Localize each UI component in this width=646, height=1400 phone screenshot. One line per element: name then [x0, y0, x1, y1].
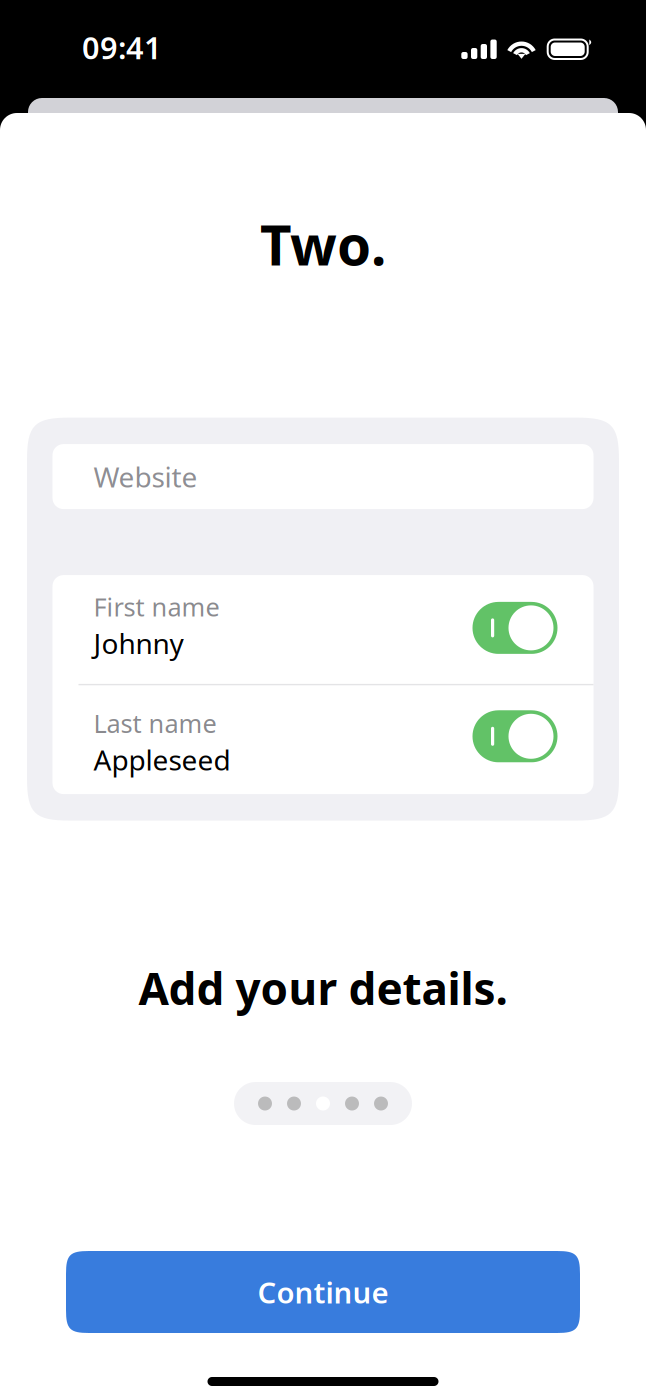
staticText: Website	[93, 458, 197, 495]
staticText: First name	[93, 590, 219, 623]
button[interactable]: Continue	[66, 1251, 580, 1333]
staticText: Appleseed	[93, 741, 230, 778]
staticText: Two.	[260, 208, 386, 281]
staticText: Add your details.	[138, 959, 507, 1017]
staticText: Johnny	[93, 624, 183, 662]
staticText: Continue	[257, 1272, 388, 1311]
staticText: 09:41	[82, 27, 162, 68]
staticText: Last name	[93, 706, 216, 740]
